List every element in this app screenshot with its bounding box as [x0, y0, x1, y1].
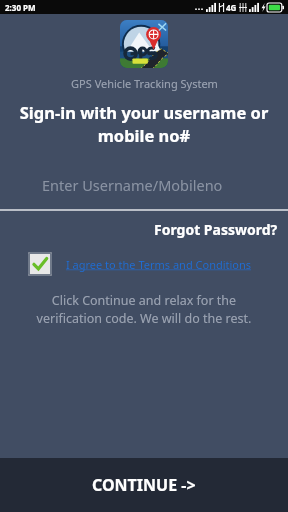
button[interactable]: I agree to the Terms and Conditions — [0, 252, 288, 276]
staticText: Click Continue and relax for the verific… — [24, 292, 264, 327]
staticText: Enter Username/Mobileno — [42, 175, 223, 195]
button[interactable]: CONTINUE -> — [0, 458, 288, 512]
other: App logo — [120, 20, 168, 68]
staticText: Forgot Password? — [154, 220, 278, 239]
staticText: 4G — [226, 2, 237, 13]
button[interactable]: Enter Username/Mobileno — [0, 165, 288, 205]
staticText: I agree to the Terms and Conditions — [66, 257, 252, 272]
staticText: Sign-in with your username or mobile no# — [8, 101, 280, 147]
button[interactable]: Forgot Password? — [144, 217, 288, 242]
staticText: CONTINUE -> — [92, 474, 196, 496]
staticText: GPS Vehicle Tracking System — [71, 76, 218, 91]
staticText: 2:30 PM — [5, 2, 36, 13]
